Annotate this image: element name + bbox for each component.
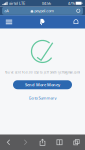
button[interactable]: Menu (2, 15, 15, 29)
button[interactable]: Tabs (68, 134, 85, 150)
staticText: paypal.com (34, 8, 54, 13)
button[interactable]: Back (0, 134, 17, 150)
staticText: airtel (9, 1, 18, 6)
staticText: 47% (68, 1, 75, 6)
staticText: Go to Summary (28, 95, 56, 100)
staticText: aA (4, 8, 9, 13)
button[interactable]: Share (34, 134, 51, 150)
staticText: Send More Money (25, 82, 60, 87)
button[interactable]: Text size (3, 7, 10, 15)
button[interactable]: Reload page (75, 7, 82, 15)
staticText: LTE (19, 1, 25, 6)
button[interactable]: Forward (17, 134, 34, 150)
button[interactable]: Notifications (69, 15, 82, 29)
button[interactable]: Go to Summary (28, 95, 56, 100)
button[interactable]: Bookmarks (51, 134, 68, 150)
staticText: 04:56 (42, 1, 51, 6)
button[interactable]: Send More Money (13, 80, 72, 89)
staticText: You've sent $50.00 USD to Jeff Smith (je… (5, 71, 80, 74)
